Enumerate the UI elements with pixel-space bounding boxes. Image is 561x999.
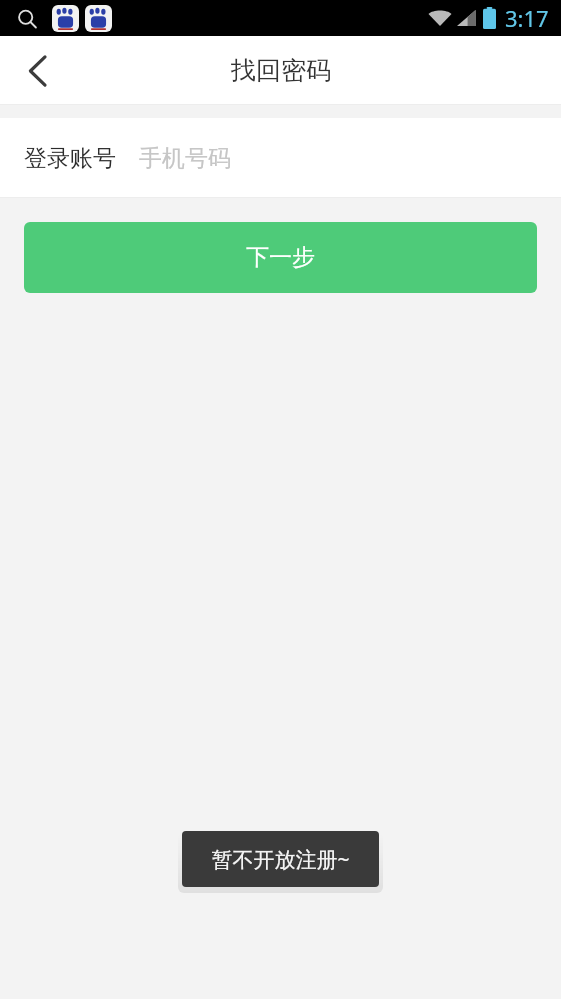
staticText: 3:17 — [505, 3, 549, 33]
staticText: 下一步 — [246, 243, 315, 272]
button[interactable]: Back — [0, 36, 76, 105]
button[interactable]: 下一步 — [24, 222, 537, 293]
staticText: 找回密码 — [231, 55, 331, 86]
staticText: 登录账号 — [24, 144, 116, 173]
button[interactable]: 登录账号 — [0, 118, 561, 198]
staticText: 手机号码 — [139, 144, 231, 173]
staticText: 暂不开放注册~ — [211, 845, 350, 874]
